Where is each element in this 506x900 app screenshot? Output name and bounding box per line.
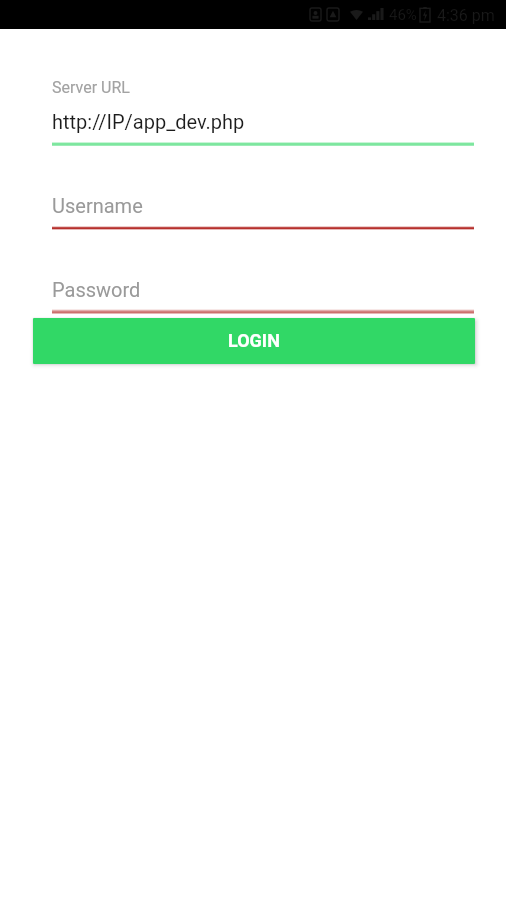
other: Notification bbox=[327, 8, 339, 21]
button[interactable]: LOGIN bbox=[33, 318, 475, 364]
other: Signal strength bbox=[368, 8, 384, 20]
staticText: Username bbox=[52, 194, 143, 217]
staticText: http://IP/app_dev.php bbox=[52, 110, 245, 133]
staticText: LOGIN bbox=[228, 330, 280, 351]
staticText: 4:36 pm bbox=[437, 6, 495, 25]
staticText: 46% bbox=[389, 6, 417, 24]
staticText: Server URL bbox=[52, 78, 130, 97]
other: Notification bbox=[310, 8, 321, 21]
other: Battery charging bbox=[420, 7, 430, 22]
other: Wi-Fi bbox=[350, 8, 363, 20]
staticText: Password bbox=[52, 278, 141, 301]
